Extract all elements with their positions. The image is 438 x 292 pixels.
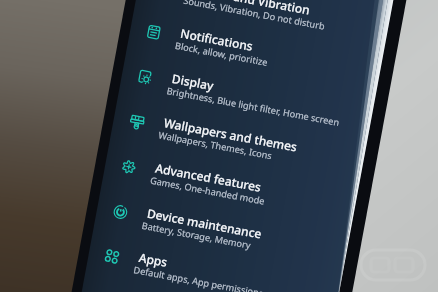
staticText: Block, allow, prioritize: [174, 39, 269, 69]
button[interactable]: Wallpapers and themes: [110, 94, 367, 186]
other: Device maintenance: [112, 203, 129, 221]
other: Wallpapers and themes: [128, 113, 146, 130]
staticText: Display: [171, 70, 215, 93]
staticText: Games, One-handed mode: [149, 174, 266, 208]
staticText: Wallpapers and themes: [163, 114, 299, 155]
staticText: Advanced features: [154, 159, 263, 195]
button[interactable]: Advanced features: [102, 139, 359, 231]
other: Display: [137, 69, 154, 86]
button[interactable]: Apps: [85, 229, 342, 292]
staticText: Apps: [138, 249, 169, 270]
button[interactable]: Notifications: [127, 5, 384, 96]
other: Notifications: [145, 23, 162, 41]
staticText: Sounds and Vibration: [188, 0, 311, 18]
staticText: Battery, Storage, Memory: [141, 219, 252, 252]
button[interactable]: Display: [118, 50, 375, 141]
other: Advanced features: [120, 158, 138, 176]
button[interactable]: Device maintenance: [93, 185, 350, 276]
staticText: Wallpapers, Themes, Icons: [157, 128, 274, 162]
button[interactable]: Sounds and Vibration: [135, 0, 392, 51]
staticText: Brightness, Blue light filter, Home scre…: [166, 84, 341, 129]
staticText: Default apps, App permissions: [132, 263, 265, 292]
staticText: Notifications: [179, 25, 255, 54]
staticText: Sounds, Vibration, Do not disturb: [182, 0, 326, 33]
staticText: Device maintenance: [146, 205, 264, 242]
other: Apps: [103, 248, 121, 265]
